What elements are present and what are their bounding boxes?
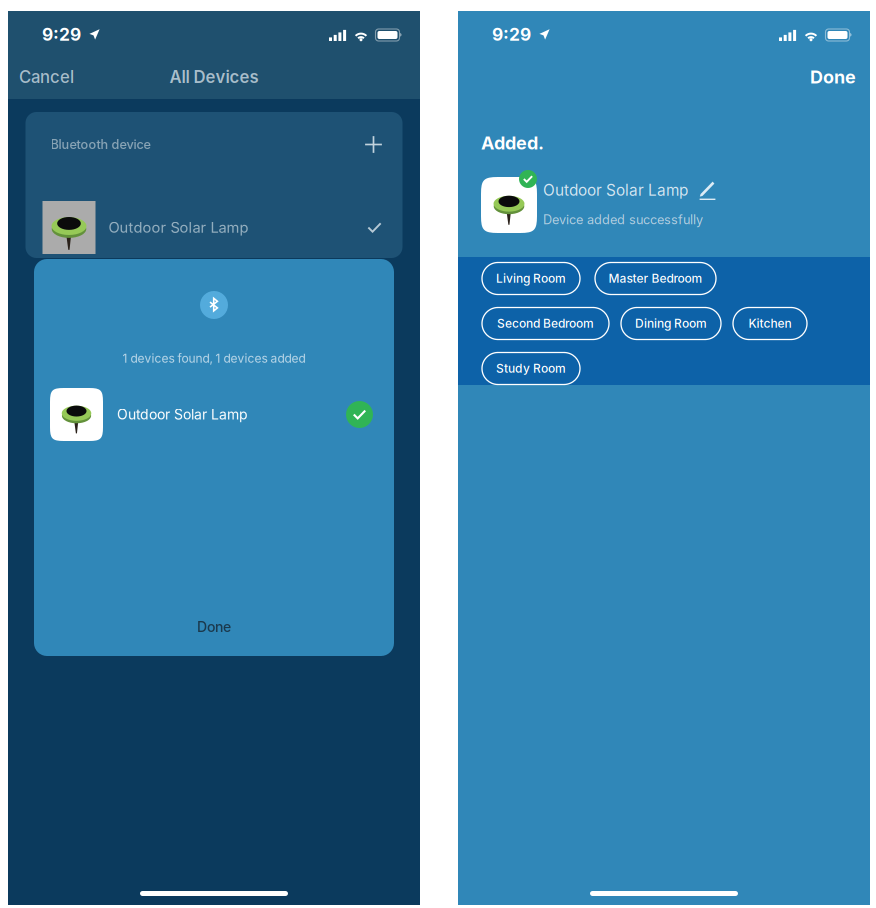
- staticText: Study Room: [496, 361, 566, 376]
- button[interactable]: Master Bedroom: [595, 262, 716, 294]
- staticText: Done: [810, 66, 856, 88]
- staticText: Bluetooth device: [50, 137, 150, 152]
- button[interactable]: Add Bluetooth device: [25, 112, 402, 177]
- button[interactable]: Study Room: [482, 352, 580, 384]
- staticText: Device added successfully: [543, 212, 703, 227]
- staticText: Done: [197, 618, 231, 635]
- button[interactable]: Outdoor Solar Lamp: [34, 388, 394, 441]
- staticText: Outdoor Solar Lamp: [117, 406, 248, 423]
- staticText: 9:29: [42, 24, 81, 45]
- staticText: Outdoor Solar Lamp: [543, 181, 688, 200]
- button[interactable]: Cancel: [8, 55, 92, 99]
- staticText: All Devices: [169, 67, 258, 87]
- button[interactable]: Outdoor Solar Lamp: [25, 201, 402, 254]
- button[interactable]: Kitchen: [733, 307, 807, 339]
- staticText: Kitchen: [748, 316, 791, 331]
- button[interactable]: Living Room: [482, 262, 580, 294]
- button[interactable]: Done: [34, 599, 394, 655]
- staticText: Living Room: [496, 271, 566, 286]
- staticText: Dining Room: [635, 316, 707, 331]
- staticText: Outdoor Solar Lamp: [108, 219, 248, 236]
- staticText: 1 devices found, 1 devices added: [122, 351, 305, 365]
- button[interactable]: Outdoor Solar Lamp: [481, 163, 855, 235]
- staticText: 9:29: [492, 24, 531, 45]
- staticText: Cancel: [19, 67, 74, 87]
- staticText: Master Bedroom: [608, 271, 702, 286]
- button[interactable]: Done: [458, 55, 870, 99]
- button[interactable]: Dining Room: [621, 307, 721, 339]
- staticText: Second Bedroom: [497, 316, 594, 331]
- button[interactable]: Second Bedroom: [482, 307, 609, 339]
- staticText: Added.: [481, 132, 544, 154]
